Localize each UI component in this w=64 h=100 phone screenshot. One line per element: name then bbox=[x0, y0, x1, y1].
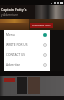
staticText: Menu bbox=[6, 33, 15, 37]
staticText: Captain Fatty's bbox=[1, 7, 27, 12]
staticText: SUBSCRIBE NOW bbox=[32, 24, 51, 27]
button[interactable]: Menu bbox=[4, 30, 50, 40]
button[interactable]: WRITE FOR US bbox=[4, 40, 50, 50]
staticText: Advertise bbox=[6, 63, 21, 67]
button[interactable]: CONTACT US bbox=[4, 50, 50, 60]
staticText: CONTACT US bbox=[6, 53, 26, 57]
staticText: WRITE FOR US bbox=[6, 43, 28, 47]
staticText: y Adventure bbox=[1, 13, 18, 17]
button[interactable]: SUBSCRIBE NOW bbox=[30, 23, 53, 28]
button[interactable]: Advertise bbox=[4, 60, 50, 70]
